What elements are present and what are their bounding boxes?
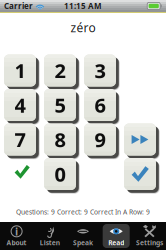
staticText: Read xyxy=(108,238,124,247)
staticText: 0 xyxy=(54,161,65,187)
staticText: 6 xyxy=(94,92,105,118)
staticText: 7 xyxy=(14,126,25,153)
staticText: i xyxy=(15,224,18,238)
button[interactable]: Speak xyxy=(66,222,100,250)
button[interactable]: Correct xyxy=(4,158,40,194)
staticText: 3 xyxy=(94,57,105,84)
staticText: 1 xyxy=(14,57,25,84)
staticText: Speak xyxy=(73,238,93,247)
staticText: zéro xyxy=(70,19,95,35)
button[interactable]: Read xyxy=(100,222,133,250)
button[interactable]: 6 xyxy=(84,89,120,125)
button[interactable]: 1 xyxy=(4,54,40,90)
button[interactable]: 2 xyxy=(44,54,80,90)
button[interactable]: 0 xyxy=(44,158,80,194)
staticText: 2 xyxy=(54,57,65,84)
staticText: 5 xyxy=(54,92,65,118)
button[interactable]: 9 xyxy=(84,123,120,159)
button[interactable]: Settings xyxy=(133,222,166,250)
button[interactable]: Next question xyxy=(124,123,160,159)
button[interactable]: Submit answer xyxy=(124,158,160,194)
button[interactable]: 5 xyxy=(44,89,80,125)
button[interactable]: i xyxy=(0,222,33,250)
button[interactable]: Listen xyxy=(33,222,66,250)
staticText: Questions: 9 Correct: 9 Correct In A Row… xyxy=(16,208,150,216)
staticText: 8 xyxy=(54,126,65,153)
staticText: 11:15 AM xyxy=(64,1,102,11)
staticText: Carrier xyxy=(4,1,33,11)
staticText: About xyxy=(7,238,27,247)
staticText: 4 xyxy=(14,92,25,118)
button[interactable]: 8 xyxy=(44,123,80,159)
button[interactable]: 7 xyxy=(4,123,40,159)
button[interactable]: 4 xyxy=(4,89,40,125)
staticText: Listen xyxy=(40,238,60,247)
button[interactable]: 3 xyxy=(84,54,120,90)
staticText: Settings xyxy=(136,238,163,247)
staticText: 9 xyxy=(94,126,105,153)
